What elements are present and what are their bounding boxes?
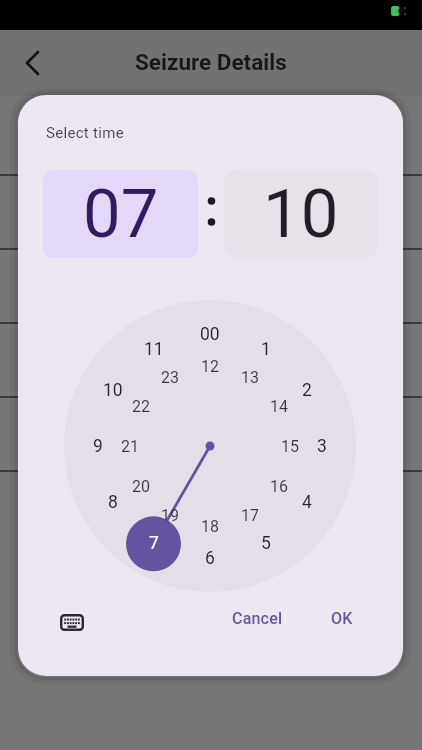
staticText: 15 (281, 437, 299, 456)
staticText: 5 (261, 533, 271, 554)
staticText: 14 (270, 397, 288, 416)
button[interactable]: 1 (246, 336, 286, 362)
staticText: 12 (201, 357, 219, 376)
button[interactable]: 23 (150, 365, 190, 389)
staticText: Select time (46, 124, 124, 142)
staticText: 00 (200, 324, 220, 345)
staticText: 18 (201, 517, 219, 536)
staticText: 13 (241, 368, 259, 387)
staticText: 19 (161, 506, 179, 525)
staticText: 2 (302, 380, 312, 401)
button[interactable]: 10 (93, 377, 133, 403)
staticText: 11 (144, 339, 164, 360)
button[interactable]: 7 (134, 530, 174, 556)
staticText: 07 (83, 175, 159, 254)
staticText: 4 (302, 492, 312, 513)
button[interactable]: 9 (78, 433, 118, 459)
staticText: 9 (93, 436, 103, 457)
staticText: 10 (103, 380, 123, 401)
button[interactable]: 21 (110, 434, 150, 458)
button[interactable]: 2 (287, 377, 327, 403)
staticText: Cancel (232, 609, 283, 628)
button[interactable]: 4 (287, 489, 327, 515)
button[interactable]: 19 (150, 503, 190, 527)
button[interactable] (48, 602, 96, 642)
button[interactable]: Cancel (221, 598, 294, 638)
button[interactable]: 20 (121, 474, 161, 498)
button[interactable] (16, 46, 50, 80)
button[interactable]: 11 (134, 336, 174, 362)
button[interactable]: OK (313, 598, 370, 638)
button[interactable]: 6 (190, 545, 230, 571)
button[interactable]: 13 (230, 365, 270, 389)
button[interactable]: 14 (259, 394, 299, 418)
staticText: 16 (270, 477, 288, 496)
staticText: 23 (161, 368, 179, 387)
button[interactable]: 18 (190, 514, 230, 538)
button[interactable]: 10 (224, 171, 378, 257)
staticText: 20 (132, 477, 150, 496)
staticText: 8 (108, 492, 118, 513)
button[interactable]: 00 (190, 321, 230, 347)
staticText: 17 (241, 506, 259, 525)
staticText: 22 (132, 397, 150, 416)
button[interactable]: 5 (246, 530, 286, 556)
button[interactable]: 3 (302, 433, 342, 459)
button[interactable]: 22 (121, 394, 161, 418)
staticText: 10 (263, 175, 339, 254)
staticText: OK (331, 609, 353, 628)
button[interactable]: 15 (270, 434, 310, 458)
staticText: 6 (205, 548, 215, 569)
button[interactable]: 8 (93, 489, 133, 515)
staticText: 3 (317, 436, 327, 457)
button[interactable]: 17 (230, 503, 270, 527)
button[interactable]: 16 (259, 474, 299, 498)
button[interactable]: 07 (43, 170, 198, 258)
staticText: 7 (149, 533, 159, 554)
button[interactable]: 12 (190, 354, 230, 378)
staticText: 21 (121, 437, 139, 456)
staticText: Seizure Details (135, 49, 287, 75)
staticText: 1 (261, 339, 271, 360)
